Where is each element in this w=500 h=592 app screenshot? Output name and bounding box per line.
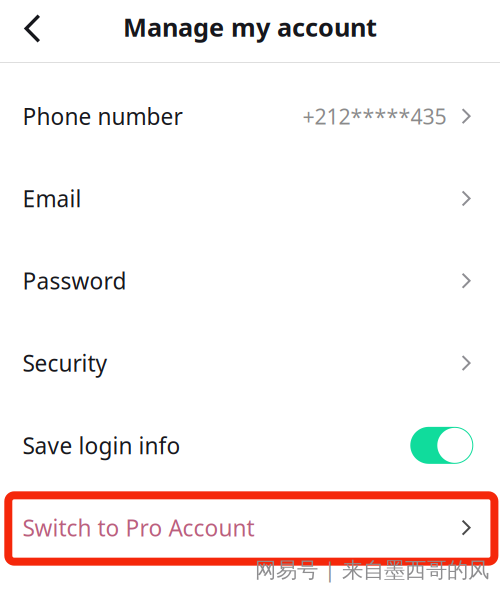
button[interactable]: Email [0,157,500,240]
button[interactable]: Phone number [0,75,500,157]
button[interactable]: Back [0,14,52,43]
button[interactable]: Switch to Pro Account [0,486,500,569]
button[interactable]: Security [0,322,500,404]
staticText: Security [22,348,107,378]
button[interactable]: Save login info [0,404,500,486]
staticText: Manage my account [123,10,377,44]
staticText: Email [22,183,81,213]
staticText: Phone number [22,101,182,131]
staticText: 网易号 | 来自墨西哥的风 [255,555,489,583]
button[interactable]: Password [0,240,500,322]
staticText: Save login info [22,430,180,460]
staticText: Password [22,266,126,296]
staticText: Switch to Pro Account [22,513,254,543]
staticText: +212*****435 [302,102,446,130]
